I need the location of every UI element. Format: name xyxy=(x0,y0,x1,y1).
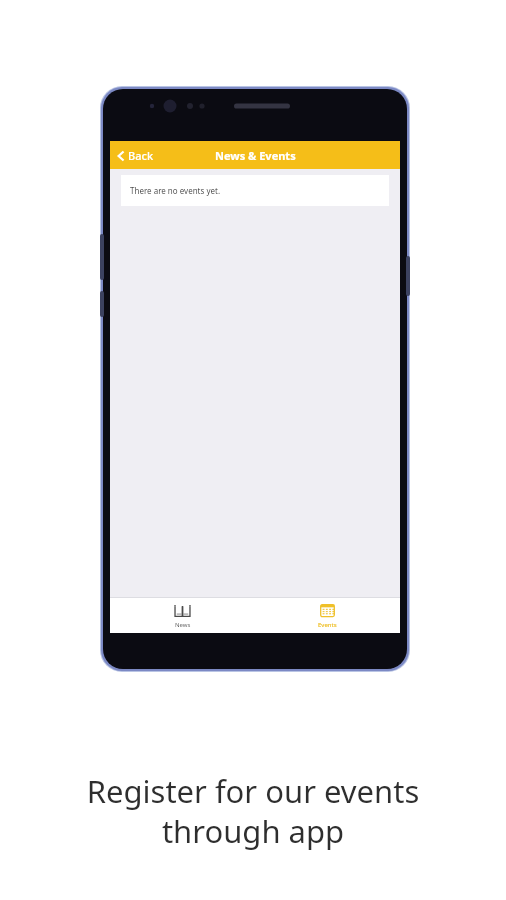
other: Volume buttons xyxy=(100,234,104,280)
button[interactable]: Events xyxy=(255,597,400,633)
other: Bixby button xyxy=(100,291,104,317)
staticText: There are no events yet. xyxy=(130,185,221,196)
staticText: Back xyxy=(128,148,154,163)
button[interactable]: Back xyxy=(110,148,162,163)
button[interactable]: There are no events yet. xyxy=(121,175,389,206)
staticText: News & Events xyxy=(215,148,296,163)
other: Power button xyxy=(406,256,410,296)
staticText: Register for our events through app xyxy=(28,770,478,852)
staticText: News xyxy=(175,621,191,629)
staticText: Events xyxy=(318,621,337,629)
button[interactable]: News xyxy=(110,597,255,633)
